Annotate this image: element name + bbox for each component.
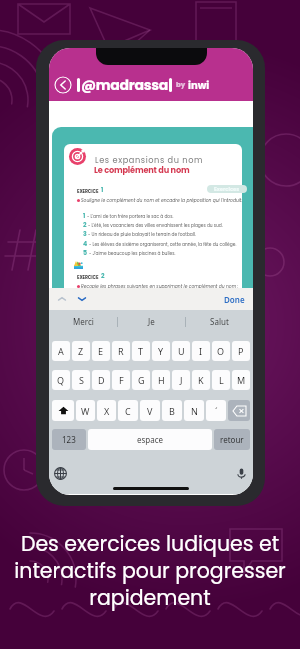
- button[interactable]: Dictate: [235, 467, 248, 480]
- staticText: W: [81, 405, 90, 417]
- staticText: V: [147, 405, 153, 417]
- staticText: P: [238, 345, 244, 357]
- button[interactable]: Change keyboard: [54, 467, 67, 480]
- staticText: Q: [57, 374, 65, 386]
- button[interactable]: E: [92, 341, 110, 361]
- button[interactable]: T: [132, 341, 150, 361]
- button[interactable]: Merci: [49, 310, 117, 333]
- button[interactable]: Je: [118, 310, 185, 333]
- button[interactable]: F: [112, 370, 130, 390]
- staticText: C: [125, 405, 131, 417]
- button[interactable]: L: [212, 370, 230, 390]
- staticText: K: [198, 374, 204, 386]
- staticText: T: [138, 345, 144, 357]
- staticText: Souligne le complément du nom et encadre…: [81, 197, 243, 203]
- button[interactable]: Previous field: [55, 292, 69, 306]
- button[interactable]: K: [192, 370, 210, 390]
- staticText: M: [237, 374, 246, 386]
- button[interactable]: M: [232, 370, 250, 390]
- staticText: @madrassa: [81, 75, 168, 95]
- staticText: espace: [137, 434, 164, 445]
- button[interactable]: ´: [206, 400, 226, 421]
- button[interactable]: retour: [214, 429, 250, 450]
- button[interactable]: Exercices: [207, 185, 247, 193]
- staticText: Recopie les phrases suivantes en supprim…: [81, 283, 239, 288]
- staticText: J: [180, 374, 183, 386]
- button[interactable]: A: [52, 341, 70, 361]
- staticText: F: [119, 374, 124, 386]
- button[interactable]: Q: [52, 370, 70, 390]
- button[interactable]: W: [76, 400, 95, 421]
- staticText: retour: [220, 434, 244, 445]
- button[interactable]: P: [232, 341, 250, 361]
- staticText: Y: [158, 345, 164, 357]
- staticText: N: [191, 405, 198, 417]
- button[interactable]: Back: [54, 76, 72, 94]
- staticText: 123: [62, 434, 76, 445]
- staticText: Je: [148, 316, 155, 327]
- button[interactable]: B: [162, 400, 182, 421]
- staticText: B: [169, 405, 175, 417]
- button[interactable]: X: [97, 400, 116, 421]
- button[interactable]: G: [132, 370, 150, 390]
- staticText: R: [118, 345, 124, 357]
- button[interactable]: Next field: [75, 292, 89, 306]
- button[interactable]: Salut: [186, 310, 253, 333]
- button[interactable]: Z: [72, 341, 90, 361]
- staticText: EXERCICE: [77, 188, 99, 194]
- staticText: Salut: [210, 316, 229, 327]
- button[interactable]: C: [118, 400, 138, 421]
- button[interactable]: R: [112, 341, 130, 361]
- staticText: Les expansions du nom: [95, 154, 204, 165]
- staticText: G: [138, 374, 145, 386]
- staticText: Le complément du nom: [94, 164, 190, 175]
- staticText: 5: [83, 248, 88, 257]
- button[interactable]: I: [192, 341, 210, 361]
- staticText: ´: [215, 405, 218, 417]
- button[interactable]: H: [152, 370, 170, 390]
- button[interactable]: J: [172, 370, 190, 390]
- staticText: - J'aime beaucoup les piscines à bulles.: [89, 250, 176, 256]
- button[interactable]: Done: [222, 294, 247, 305]
- button[interactable]: Shift: [52, 400, 74, 421]
- button[interactable]: S: [72, 370, 90, 390]
- button[interactable]: V: [140, 400, 160, 421]
- staticText: Exercices: [214, 186, 240, 193]
- staticText: - L'ami de ton frère portera le sac à do…: [87, 213, 174, 219]
- staticText: S: [79, 374, 84, 386]
- staticText: D: [98, 374, 105, 386]
- button[interactable]: espace: [88, 429, 212, 450]
- staticText: O: [217, 345, 225, 357]
- staticText: Merci: [73, 316, 94, 327]
- staticText: 4: [83, 239, 88, 248]
- staticText: 3: [83, 229, 87, 238]
- staticText: A: [58, 345, 64, 357]
- staticText: Done: [224, 294, 245, 305]
- staticText: E: [98, 345, 104, 357]
- staticText: U: [178, 345, 185, 357]
- button[interactable]: O: [212, 341, 230, 361]
- staticText: 2: [101, 271, 105, 280]
- button[interactable]: U: [172, 341, 190, 361]
- staticText: H: [158, 374, 165, 386]
- button[interactable]: 123: [52, 429, 86, 450]
- staticText: inwi: [188, 78, 210, 92]
- staticText: by: [176, 80, 186, 90]
- button[interactable]: Y: [152, 341, 170, 361]
- staticText: Des exercices ludiques et interactifs po…: [14, 529, 286, 612]
- button[interactable]: N: [184, 400, 204, 421]
- button[interactable]: Delete: [228, 400, 250, 421]
- staticText: EXERCICE: [77, 274, 99, 280]
- staticText: 1: [83, 211, 86, 220]
- staticText: 2: [83, 220, 87, 229]
- staticText: L: [219, 374, 224, 386]
- staticText: Z: [78, 345, 84, 357]
- staticText: - Un rideau de pluie balayait le terrain…: [88, 231, 196, 237]
- staticText: X: [104, 405, 110, 417]
- staticText: 1: [101, 185, 104, 194]
- staticText: I: [199, 345, 203, 357]
- staticText: - L'été, les vacanciers des villes envah…: [88, 222, 223, 228]
- button[interactable]: D: [92, 370, 110, 390]
- staticText: - Les élèves de sixième organiseront, ce…: [89, 241, 237, 247]
